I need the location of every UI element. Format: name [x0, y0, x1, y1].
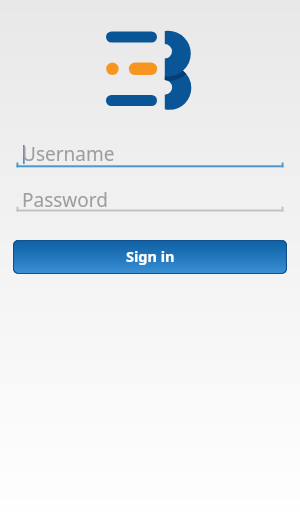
staticText: Username [22, 141, 115, 167]
button[interactable]: Sign in [13, 240, 287, 274]
button[interactable]: Password [16, 184, 284, 212]
button[interactable]: Username [16, 138, 284, 168]
staticText: Sign in [126, 246, 175, 266]
staticText: Password [22, 187, 108, 213]
